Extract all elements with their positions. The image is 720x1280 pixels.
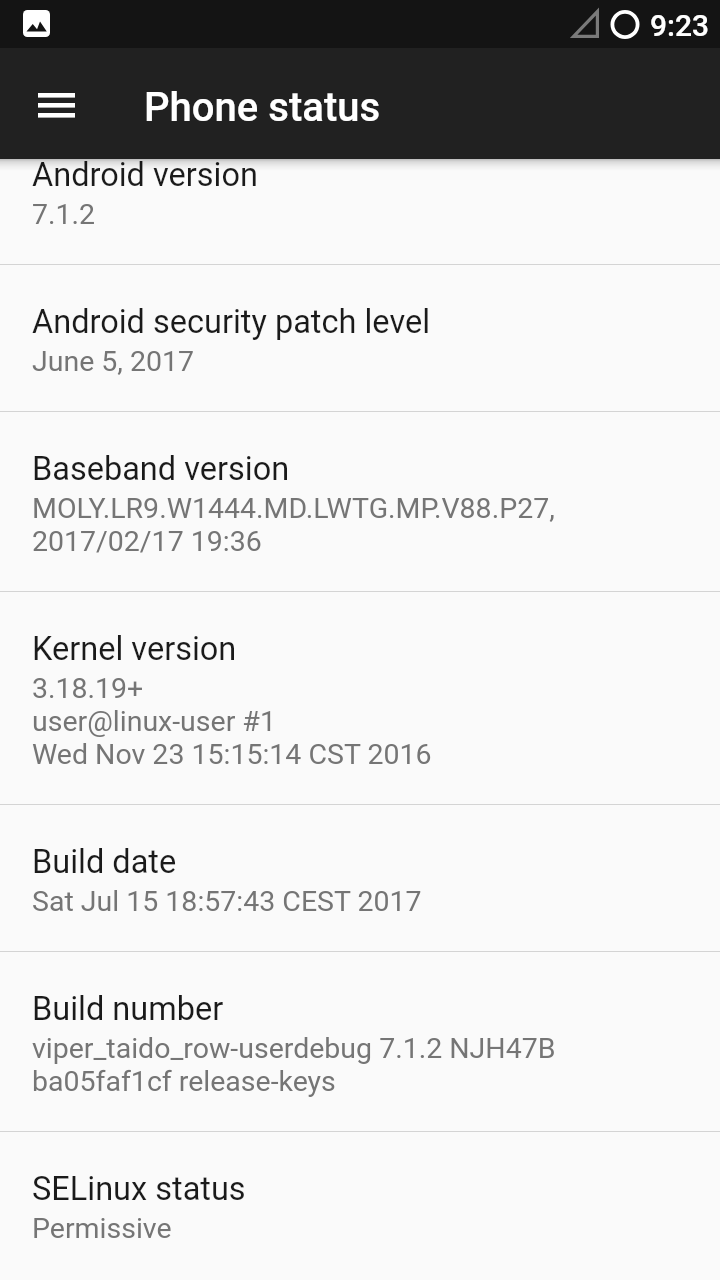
staticText: 9:23	[650, 8, 710, 43]
staticText: Permissive	[32, 1212, 172, 1245]
button[interactable]: Android security patch level	[0, 265, 720, 411]
staticText: June 5, 2017	[32, 345, 195, 378]
staticText: 3.18.19+ user@linux-user #1 Wed Nov 23 1…	[32, 672, 432, 771]
staticText: Android version	[32, 156, 258, 194]
button[interactable]: Android version	[0, 151, 720, 264]
staticText: Kernel version	[32, 630, 237, 668]
staticText: Baseband version	[32, 450, 290, 488]
button[interactable]: Kernel version	[0, 592, 720, 804]
staticText: 7.1.2	[32, 198, 96, 231]
button[interactable]: SELinux status	[0, 1132, 720, 1278]
staticText: Sat Jul 15 18:57:43 CEST 2017	[32, 885, 422, 918]
button[interactable]: Baseband version	[0, 412, 720, 591]
button[interactable]: Build number	[0, 952, 720, 1131]
staticText: Build date	[32, 843, 177, 881]
staticText: MOLY.LR9.W1444.MD.LWTG.MP.V88.P27, 2017/…	[32, 492, 555, 558]
staticText: Build number	[32, 990, 224, 1028]
staticText: SELinux status	[32, 1170, 246, 1208]
staticText: Android security patch level	[32, 303, 431, 341]
button[interactable]: Build date	[0, 805, 720, 951]
button[interactable]: Open navigation menu	[9, 58, 103, 152]
staticText: Phone status	[144, 84, 381, 131]
staticText: viper_taido_row-userdebug 7.1.2 NJH47B b…	[32, 1032, 556, 1098]
